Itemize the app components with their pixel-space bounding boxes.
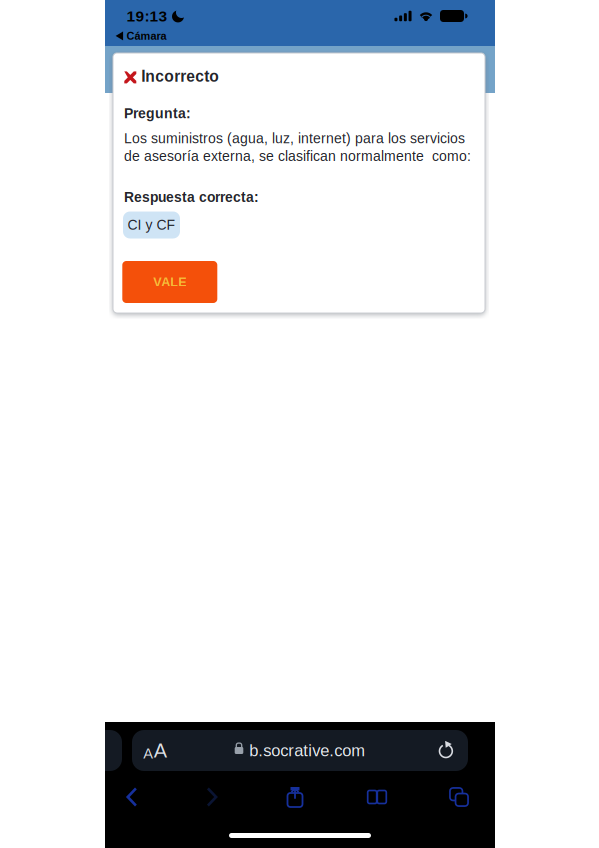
staticText: CI y CF	[127, 217, 175, 233]
staticText: Los suministros (agua, luz, internet) pa…	[124, 130, 465, 146]
staticText: A	[143, 745, 153, 762]
button[interactable]: Back	[90, 779, 172, 815]
button[interactable]: Tabs	[418, 779, 500, 815]
staticText: 19:13	[126, 7, 167, 25]
staticText: b.socrative.com	[249, 741, 365, 760]
button[interactable]: Text size	[132, 730, 178, 771]
button[interactable]: Reload	[424, 730, 468, 771]
button[interactable]: VALE	[122, 261, 217, 303]
staticText: Respuesta correcta:	[124, 189, 259, 205]
button[interactable]: Bookmarks	[336, 779, 418, 815]
staticText: Pregunta:	[124, 105, 191, 121]
staticText: Cámara	[126, 30, 166, 42]
staticText: VALE	[153, 275, 186, 289]
staticText: Incorrecto	[141, 68, 219, 85]
staticText: A	[154, 739, 167, 762]
button[interactable]: Forward	[172, 779, 254, 815]
staticText: de asesoría externa, se clasifican norma…	[124, 148, 471, 164]
button[interactable]: Share	[254, 779, 336, 815]
button[interactable]: Cámara	[114, 29, 168, 43]
